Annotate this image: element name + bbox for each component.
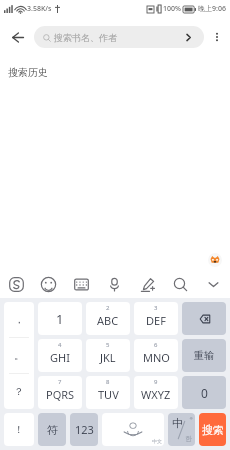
staticText: 晚上9:06 (198, 4, 226, 14)
staticText: 重输 (194, 349, 214, 362)
staticText: 中 (172, 416, 183, 430)
button[interactable]: 搜索 (199, 413, 226, 446)
button[interactable]: 9 (134, 376, 178, 409)
staticText: 3.58K/s (27, 4, 52, 14)
button[interactable]: 123 (70, 413, 98, 446)
staticText: 搜索 (202, 423, 224, 437)
staticText: ？ (14, 385, 24, 398)
button[interactable]: 3 (134, 302, 178, 335)
staticText: ， (14, 313, 24, 326)
button[interactable]: 6 (134, 339, 178, 372)
button[interactable]: 4 (38, 339, 82, 372)
button[interactable]: ， (4, 302, 34, 337)
button[interactable]: 1 (38, 302, 82, 335)
staticText: 中文 (152, 438, 162, 444)
button[interactable]: ？ (4, 374, 34, 409)
button[interactable]: Sogou input (0, 270, 32, 298)
staticText: DEF (146, 313, 166, 328)
button[interactable]: 8 (86, 376, 130, 409)
button[interactable]: 重输 (182, 339, 226, 372)
staticText: 搜索书名、作者 (54, 32, 117, 43)
button[interactable]: Hide keyboard (197, 270, 230, 298)
staticText: 2 (106, 304, 110, 312)
button[interactable]: 。 (4, 338, 34, 373)
button[interactable]: 0 (182, 376, 226, 409)
staticText: 6 (154, 341, 158, 349)
button[interactable]: Space (102, 413, 164, 446)
staticText: 9 (154, 378, 158, 386)
button[interactable]: Keyboard layout (65, 270, 98, 298)
staticText: 123 (75, 422, 94, 437)
staticText: ABC (97, 313, 119, 328)
staticText: 符 (47, 423, 58, 437)
button[interactable]: 5 (86, 339, 130, 372)
staticText: 5 (106, 341, 110, 349)
staticText: GHI (50, 350, 70, 365)
staticText: PQRS (46, 387, 75, 402)
button[interactable]: 搜索书名、作者 (34, 26, 204, 48)
staticText: 1 (56, 310, 64, 328)
button[interactable]: More options (204, 18, 230, 56)
staticText: JKL (100, 350, 116, 365)
staticText: 。 (14, 349, 24, 362)
button[interactable]: Handwriting (131, 270, 164, 298)
button[interactable]: Back (0, 18, 34, 56)
staticText: 3 (154, 304, 158, 312)
button[interactable]: Voice input (98, 270, 131, 298)
button[interactable]: Backspace (182, 302, 226, 335)
button[interactable]: Mascot (208, 253, 222, 267)
staticText: MNO (143, 350, 170, 365)
staticText: ！ (14, 423, 24, 436)
button[interactable]: 7 (38, 376, 82, 409)
staticText: 8 (106, 378, 110, 386)
button[interactable]: Emoji (32, 270, 65, 298)
button[interactable]: ！ (4, 413, 34, 446)
staticText: TUV (98, 387, 119, 402)
staticText: 100% (163, 4, 181, 14)
staticText: 0 (201, 385, 208, 401)
staticText: 7 (58, 378, 62, 386)
staticText: WXYZ (141, 387, 171, 402)
button[interactable]: 符 (38, 413, 66, 446)
staticText: 한 (185, 434, 192, 443)
staticText: 搜索历史 (8, 66, 48, 79)
button[interactable]: 2 (86, 302, 130, 335)
button[interactable]: Switch language (168, 413, 195, 446)
staticText: 4 (58, 341, 62, 349)
button[interactable]: Search (164, 270, 197, 298)
